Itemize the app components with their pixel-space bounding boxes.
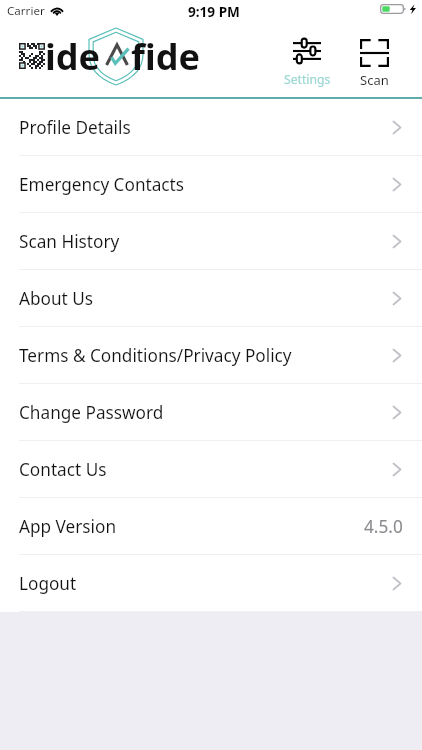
staticText: ide bbox=[45, 32, 101, 81]
staticText: Emergency Contacts bbox=[19, 173, 185, 196]
staticText: Change Password bbox=[19, 401, 164, 424]
button[interactable]: Scan History bbox=[0, 213, 422, 270]
staticText: 4.5.0 bbox=[364, 515, 403, 538]
button[interactable]: Contact Us bbox=[0, 441, 422, 498]
staticText: 9:19 PM bbox=[188, 2, 240, 21]
staticText: Carrier bbox=[7, 3, 45, 19]
staticText: App Version bbox=[19, 515, 117, 538]
staticText: Contact Us bbox=[19, 458, 107, 481]
staticText: Profile Details bbox=[19, 116, 131, 139]
button[interactable]: Emergency Contacts bbox=[0, 156, 422, 213]
staticText: Logout bbox=[19, 572, 77, 595]
button[interactable]: Terms & Conditions/Privacy Policy bbox=[0, 327, 422, 384]
staticText: About Us bbox=[19, 287, 94, 310]
button[interactable]: Logout bbox=[0, 555, 422, 612]
staticText: Terms & Conditions/Privacy Policy bbox=[19, 344, 292, 367]
button[interactable]: Settings bbox=[279, 35, 335, 88]
button[interactable]: About Us bbox=[0, 270, 422, 327]
button[interactable]: Change Password bbox=[0, 384, 422, 441]
staticText: Scan bbox=[360, 71, 389, 89]
button[interactable]: Scan bbox=[352, 35, 397, 89]
staticText: fide bbox=[131, 32, 200, 81]
button[interactable]: App Version bbox=[0, 498, 422, 555]
staticText: Scan History bbox=[19, 230, 120, 253]
button[interactable]: Profile Details bbox=[0, 99, 422, 156]
staticText: Settings bbox=[284, 71, 331, 88]
